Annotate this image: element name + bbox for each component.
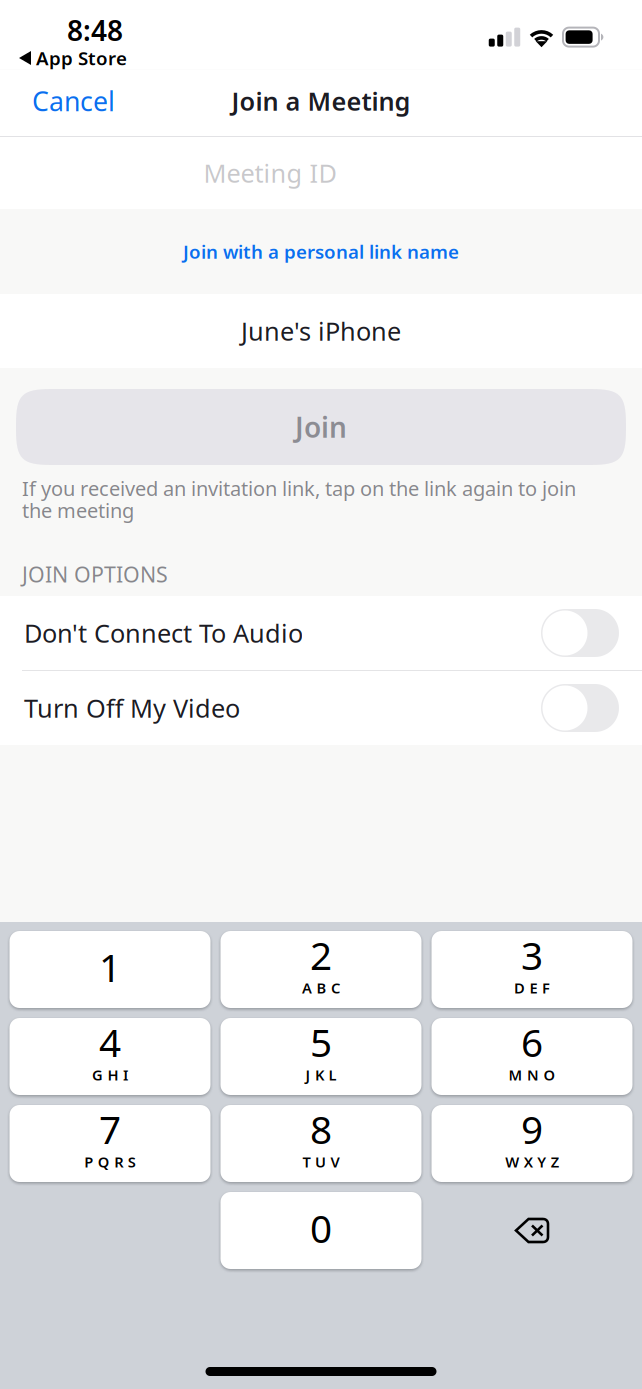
staticText: If you received an invitation link, tap … [22,475,576,502]
button[interactable]: 3 [431,931,632,1008]
button[interactable]: Join [16,389,626,465]
staticText: Cancel [32,83,115,119]
staticText: L [328,1065,336,1084]
button[interactable]: 2 [220,931,421,1008]
staticText: Q [98,1152,110,1171]
button[interactable]: Turn Off My Video [0,671,642,745]
staticText: O [543,1065,555,1084]
staticText: D [514,978,525,997]
staticText: Z [551,1152,559,1171]
staticText: Join [295,408,347,446]
staticText: M [508,1065,522,1084]
staticText: N [527,1065,539,1084]
staticText: S [128,1152,136,1171]
staticText: 8:48 [67,12,123,49]
button[interactable]: 5 [220,1018,421,1095]
staticText: the meeting [22,497,134,524]
button[interactable]: 9 [431,1105,632,1182]
staticText: X [524,1152,533,1171]
staticText: Join a Meeting [231,84,410,118]
staticText: G [92,1065,103,1084]
button[interactable]: Cancel [0,73,133,133]
staticText: 7 [99,1103,121,1155]
staticText: U [315,1152,326,1171]
staticText: J [305,1065,310,1084]
button[interactable]: 7 [9,1105,210,1182]
button[interactable]: 8 [220,1105,421,1182]
button[interactable]: App Store [0,0,642,70]
staticText: June's iPhone [241,314,401,348]
button[interactable]: Join with a personal link name [0,209,642,294]
staticText: 8 [310,1103,332,1155]
staticText: 6 [521,1016,543,1068]
staticText: I [123,1065,128,1084]
staticText: W [505,1152,519,1171]
staticText: E [529,978,537,997]
staticText: B [316,978,326,997]
button[interactable]: 4 [9,1018,210,1095]
staticText: 9 [521,1103,543,1155]
staticText: V [330,1152,339,1171]
staticText: Meeting ID [203,156,336,190]
button[interactable]: Delete [431,1192,632,1269]
staticText: 5 [310,1016,332,1068]
button[interactable]: 1 [9,931,210,1008]
button[interactable]: Don't Connect To Audio [0,596,642,670]
button[interactable]: 6 [431,1018,632,1095]
button[interactable]: 0 [220,1192,421,1269]
staticText: App Store [36,46,127,70]
staticText: 1 [99,941,121,993]
staticText: Y [537,1152,546,1171]
staticText: H [107,1065,118,1084]
staticText: Join with a personal link name [183,239,459,264]
staticText: R [114,1152,123,1171]
staticText: P [84,1152,93,1171]
staticText: T [302,1152,310,1171]
staticText: K [315,1065,324,1084]
staticText: Don't Connect To Audio [24,616,303,650]
staticText: JOIN OPTIONS [22,560,168,588]
staticText: 2 [310,929,332,981]
staticText: F [542,978,550,997]
staticText: Turn Off My Video [24,691,240,725]
staticText: C [331,978,340,997]
staticText: 0 [310,1202,332,1254]
staticText: 4 [99,1016,121,1068]
staticText: 3 [521,929,543,981]
staticText: A [302,978,312,997]
